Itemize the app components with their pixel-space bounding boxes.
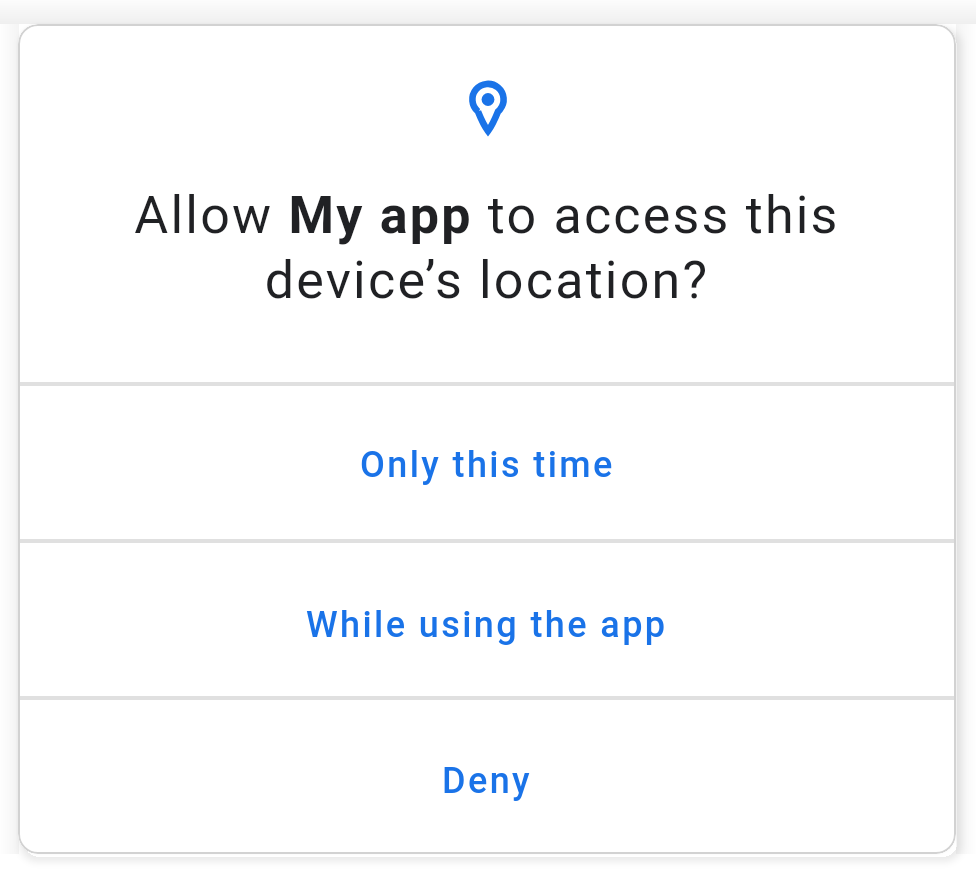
button[interactable]: Only this time xyxy=(18,385,956,539)
staticText: Allow My app to access this device’s loc… xyxy=(134,185,840,310)
button[interactable]: Deny xyxy=(18,700,956,854)
staticText: Only this time xyxy=(360,444,615,486)
staticText: While using the app xyxy=(306,604,668,646)
button[interactable]: While using the app xyxy=(18,543,956,697)
staticText: Deny xyxy=(442,760,532,802)
